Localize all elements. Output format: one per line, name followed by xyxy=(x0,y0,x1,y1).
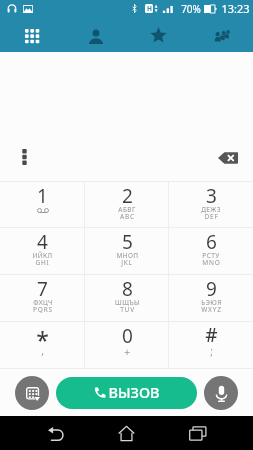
staticText: ; xyxy=(210,344,213,358)
staticText: ABC xyxy=(120,212,135,221)
staticText: 3 xyxy=(206,183,217,209)
staticText: 13:23 xyxy=(221,1,250,16)
button[interactable]: * xyxy=(0,322,85,368)
staticText: РСТУ xyxy=(202,251,220,260)
button[interactable]: Contacts xyxy=(64,16,127,52)
button[interactable]: 8 xyxy=(85,275,169,321)
staticText: ИЙКЛ xyxy=(32,251,53,260)
staticText: ФХЦЧ xyxy=(33,298,53,307)
staticText: 5 xyxy=(122,229,133,255)
button[interactable]: Home xyxy=(108,420,144,446)
staticText: PQRS xyxy=(33,305,53,314)
staticText: * xyxy=(36,324,49,355)
staticText: 1 xyxy=(37,183,48,209)
button[interactable]: 4 xyxy=(0,228,85,274)
button[interactable]: 3 xyxy=(169,182,253,227)
button[interactable]: 5 xyxy=(85,228,169,274)
staticText: JKL xyxy=(121,258,133,267)
button[interactable]: Groups xyxy=(190,16,253,52)
button[interactable]: ВЫЗОВ xyxy=(56,377,197,409)
button[interactable]: More options xyxy=(14,147,34,167)
staticText: TUV xyxy=(120,305,135,314)
staticText: MNO xyxy=(202,258,221,267)
staticText: 4 xyxy=(37,229,48,255)
staticText: 0 xyxy=(122,323,133,349)
button[interactable]: Favorites xyxy=(127,16,190,52)
staticText: WXYZ xyxy=(201,305,222,314)
staticText: # xyxy=(205,322,218,348)
button[interactable]: # xyxy=(169,322,253,368)
staticText: АБВГ xyxy=(118,205,136,214)
staticText: 2 xyxy=(122,183,133,209)
staticText: , xyxy=(41,344,44,358)
button[interactable]: Hide keypad xyxy=(15,376,49,410)
staticText: ДЕЖЗ xyxy=(201,205,221,214)
staticText: ШЩЪЫ xyxy=(115,298,140,307)
staticText: ЬЭЮЯ xyxy=(201,298,222,307)
button[interactable]: 2 xyxy=(85,182,169,227)
button[interactable]: Dialpad xyxy=(0,16,64,52)
staticText: GHI xyxy=(35,258,50,267)
staticText: 7 xyxy=(37,276,48,302)
staticText: + xyxy=(124,345,130,359)
button[interactable]: 0 xyxy=(85,322,169,368)
staticText: DEF xyxy=(204,212,219,221)
button[interactable]: 1 xyxy=(0,182,85,227)
button[interactable]: Voice search xyxy=(204,376,238,410)
staticText: 6 xyxy=(206,229,217,255)
staticText: 70% xyxy=(181,2,201,16)
button[interactable]: Recents xyxy=(180,420,216,446)
staticText: H xyxy=(147,4,152,13)
button[interactable]: Backspace xyxy=(211,148,245,168)
staticText: МНОП xyxy=(116,251,139,260)
button[interactable]: 7 xyxy=(0,275,85,321)
button[interactable]: Back xyxy=(38,420,74,446)
button[interactable]: 9 xyxy=(169,275,253,321)
staticText: 9 xyxy=(206,276,217,302)
staticText: 8 xyxy=(122,276,133,302)
staticText: ВЫЗОВ xyxy=(108,382,160,402)
button[interactable]: 6 xyxy=(169,228,253,274)
